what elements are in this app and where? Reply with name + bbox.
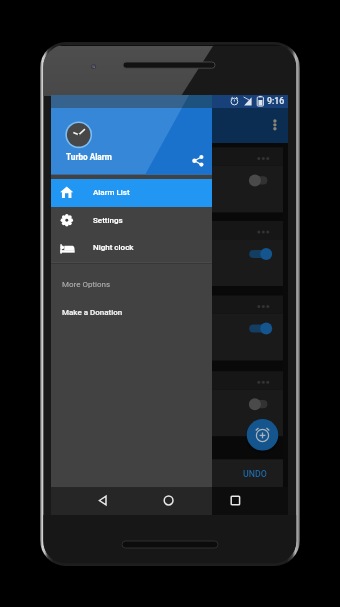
- button[interactable]: [51, 207, 212, 235]
- button[interactable]: [212, 369, 288, 434]
- button[interactable]: Back: [83, 487, 121, 514]
- button[interactable]: [51, 179, 212, 207]
- staticText: Night clock: [93, 243, 134, 252]
- button[interactable]: [212, 221, 288, 286]
- button[interactable]: [212, 147, 288, 212]
- button[interactable]: More options: [264, 110, 286, 134]
- button[interactable]: [51, 235, 212, 263]
- staticText: Settings: [93, 216, 123, 225]
- staticText: Make a Donation: [62, 308, 123, 317]
- staticText: Alarm List: [93, 188, 130, 197]
- button[interactable]: [212, 295, 288, 360]
- staticText: More Options: [62, 280, 111, 289]
- button[interactable]: Share: [189, 152, 207, 170]
- staticText: UNDO: [243, 469, 267, 479]
- staticText: Turbo Alarm: [66, 152, 112, 162]
- staticText: 9:16: [267, 96, 285, 106]
- button[interactable]: Recents: [216, 487, 254, 514]
- button[interactable]: [51, 108, 212, 175]
- button[interactable]: [51, 295, 212, 321]
- button[interactable]: [229, 461, 273, 481]
- button[interactable]: Add alarm: [246, 419, 278, 451]
- button[interactable]: Home: [150, 487, 188, 514]
